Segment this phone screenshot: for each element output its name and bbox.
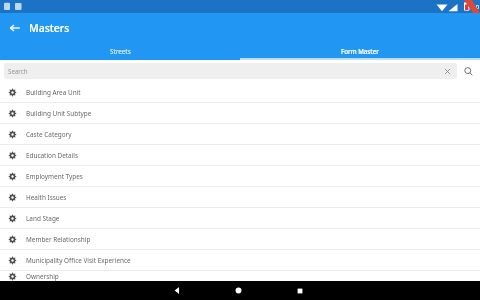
button[interactable]: Streets <box>0 42 240 60</box>
staticText: Building Unit Subtype <box>26 109 92 118</box>
button[interactable]: Building Area Unit <box>0 82 480 102</box>
button[interactable]: Caste Category <box>0 124 480 144</box>
button[interactable]: Search <box>4 63 457 79</box>
button[interactable]: Search <box>460 63 476 79</box>
button[interactable]: Back <box>168 281 187 300</box>
button[interactable]: Education Details <box>0 145 480 165</box>
staticText: Employment Types <box>26 172 83 181</box>
button[interactable]: Clear search <box>442 66 453 77</box>
staticText: Search <box>8 67 442 75</box>
staticText: Health Issues <box>26 193 67 202</box>
staticText: Masters <box>29 21 70 35</box>
button[interactable]: Home <box>229 281 248 300</box>
staticText: Building Area Unit <box>26 88 81 97</box>
staticText: Education Details <box>26 151 79 160</box>
staticText: Form Master <box>341 47 379 55</box>
button[interactable]: Building Unit Subtype <box>0 103 480 123</box>
button[interactable]: Form Master <box>240 42 480 60</box>
button[interactable]: Employment Types <box>0 166 480 186</box>
button[interactable]: Ownership <box>0 271 480 281</box>
staticText: Municipality Office Visit Experience <box>26 256 131 265</box>
staticText: Member Relationship <box>26 235 91 244</box>
staticText: Ownership <box>26 272 59 281</box>
staticText: Streets <box>110 47 131 55</box>
button[interactable]: Municipality Office Visit Experience <box>0 250 480 270</box>
staticText: Caste Category <box>26 130 72 139</box>
staticText: Land Stage <box>26 214 60 223</box>
button[interactable]: Member Relationship <box>0 229 480 249</box>
staticText: 4:10 <box>468 3 479 10</box>
button[interactable]: Land Stage <box>0 208 480 228</box>
button[interactable]: Back <box>4 17 26 39</box>
button[interactable]: Recent apps <box>290 281 309 300</box>
button[interactable]: Health Issues <box>0 187 480 207</box>
